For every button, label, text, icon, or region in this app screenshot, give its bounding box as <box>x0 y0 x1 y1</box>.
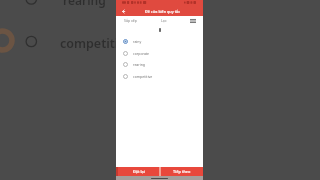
staticText: Đề cửa kiến quy tắc <box>145 9 181 14</box>
staticText: rearing <box>63 0 106 8</box>
button[interactable]: rearing <box>116 59 203 70</box>
staticText: Đặt lại <box>133 169 145 174</box>
staticText: competitive <box>60 35 133 52</box>
button[interactable]: Back <box>117 7 129 16</box>
staticText: rearing <box>133 62 145 67</box>
staticText: rainy <box>133 39 142 44</box>
button[interactable]: Tiếp theo <box>161 167 203 176</box>
button[interactable]: competitive <box>116 71 203 82</box>
staticText: competitive <box>133 74 153 79</box>
staticText: Sắp xếp <box>124 18 137 23</box>
button[interactable]: rainy <box>116 36 203 47</box>
button[interactable]: Đặt lại <box>118 167 159 176</box>
staticText: Lọc <box>161 18 167 23</box>
staticText: Tiếp theo <box>173 169 191 174</box>
button[interactable]: corporate <box>116 48 203 59</box>
button[interactable]: List options <box>189 17 197 24</box>
staticText: corporate <box>133 51 150 56</box>
